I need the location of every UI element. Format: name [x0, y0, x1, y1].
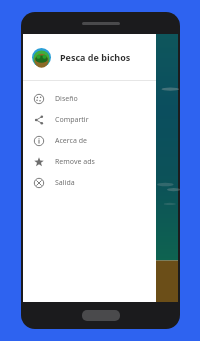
- staticText: Diseño: [55, 94, 78, 104]
- staticText: Salida: [55, 178, 75, 188]
- staticText: Compartir: [55, 115, 89, 125]
- staticText: Remove ads: [55, 157, 95, 167]
- staticText: Acerca de: [55, 136, 87, 146]
- staticText: Pesca de bichos: [60, 51, 131, 63]
- button[interactable]: Pesca de bichos: [23, 34, 156, 80]
- button[interactable]: Acerca de: [23, 130, 156, 151]
- button[interactable]: Compartir: [23, 109, 156, 130]
- button[interactable]: Diseño: [23, 88, 156, 109]
- button[interactable]: Home: [82, 310, 120, 321]
- button[interactable]: Remove ads: [23, 151, 156, 172]
- button[interactable]: Salida: [23, 172, 156, 193]
